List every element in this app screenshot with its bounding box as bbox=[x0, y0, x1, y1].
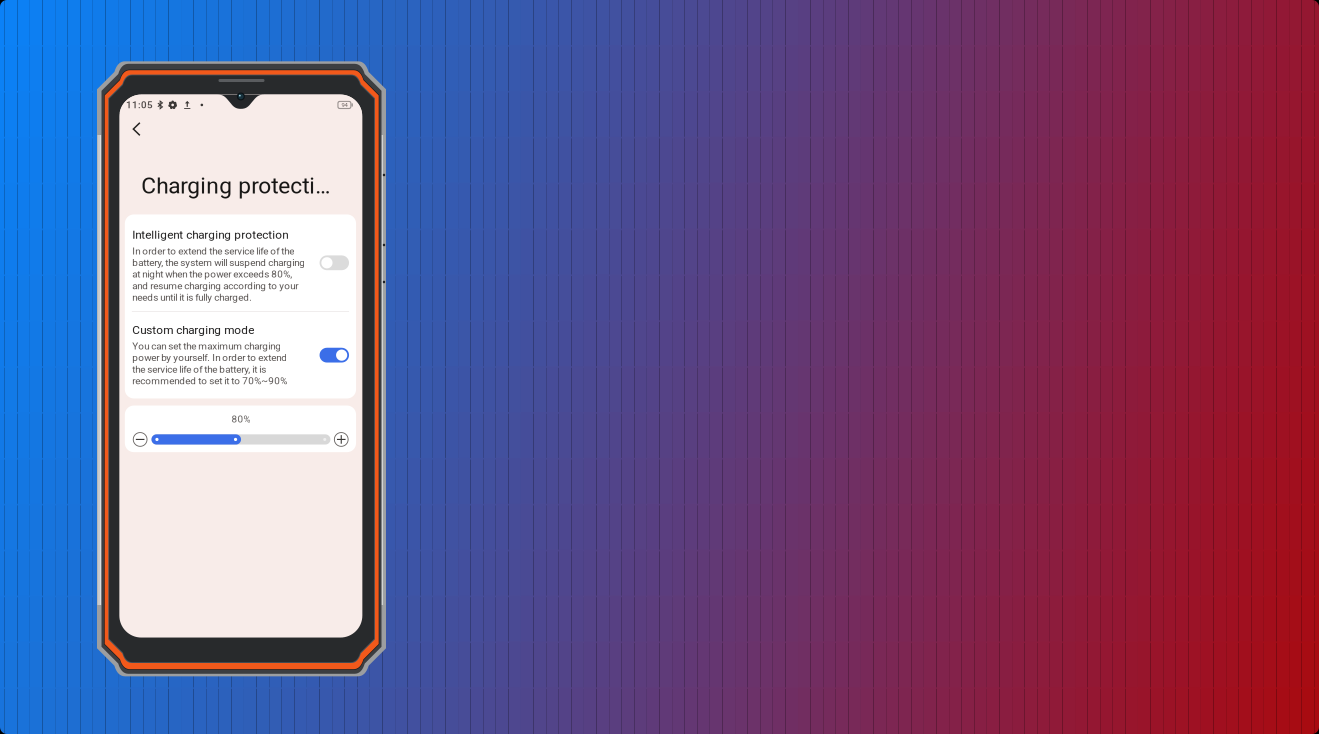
staticText: 11:05 bbox=[126, 99, 153, 111]
button[interactable]: Custom charging mode on bbox=[319, 348, 349, 363]
staticText: power by yourself. In order to extend bbox=[132, 352, 287, 364]
staticText: Charging protecti… bbox=[141, 173, 330, 199]
staticText: the service life of the battery, it is bbox=[132, 363, 266, 375]
staticText: Custom charging mode bbox=[132, 323, 254, 337]
button[interactable]: Increase charging limit bbox=[334, 432, 349, 447]
staticText: and resume charging according to your bbox=[132, 280, 298, 292]
button[interactable]: Decrease charging limit bbox=[133, 432, 148, 447]
staticText: In order to extend the service life of t… bbox=[132, 245, 294, 257]
staticText: Intelligent charging protection bbox=[132, 228, 288, 242]
staticText: needs until it is fully charged. bbox=[132, 292, 252, 303]
staticText: battery, the system will suspend chargin… bbox=[132, 257, 305, 268]
staticText: 94 bbox=[341, 101, 347, 108]
button[interactable]: Back bbox=[125, 118, 147, 140]
staticText: 80% bbox=[231, 413, 250, 425]
button[interactable]: Intelligent charging protection off bbox=[319, 255, 349, 270]
staticText: You can set the maximum charging bbox=[132, 340, 281, 352]
staticText: recommended to set it to 70%~90% bbox=[132, 375, 287, 387]
staticText: at night when the power exceeds 80%, bbox=[132, 268, 292, 280]
